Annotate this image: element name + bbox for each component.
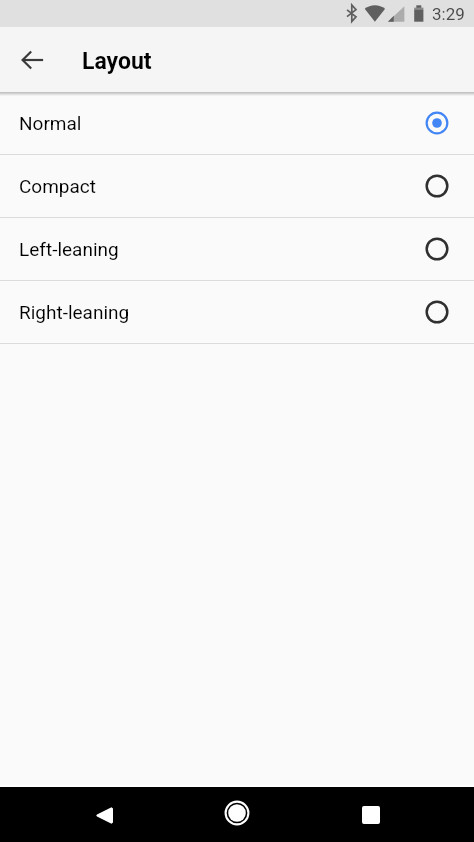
- staticText: Left-leaning: [19, 238, 119, 260]
- button[interactable]: Navigate up: [8, 36, 56, 84]
- staticText: Compact: [19, 175, 97, 197]
- staticText: Right-leaning: [19, 301, 130, 323]
- staticText: Normal: [19, 112, 82, 134]
- button[interactable]: Compact: [0, 155, 474, 217]
- button[interactable]: Right-leaning: [0, 281, 474, 343]
- button[interactable]: Back: [80, 791, 128, 839]
- staticText: Layout: [82, 48, 152, 75]
- button[interactable]: Recent apps: [347, 791, 395, 839]
- button[interactable]: Normal: [0, 92, 474, 154]
- button[interactable]: Home: [213, 789, 261, 837]
- button[interactable]: Left-leaning: [0, 218, 474, 280]
- staticText: 3:29: [432, 4, 465, 24]
